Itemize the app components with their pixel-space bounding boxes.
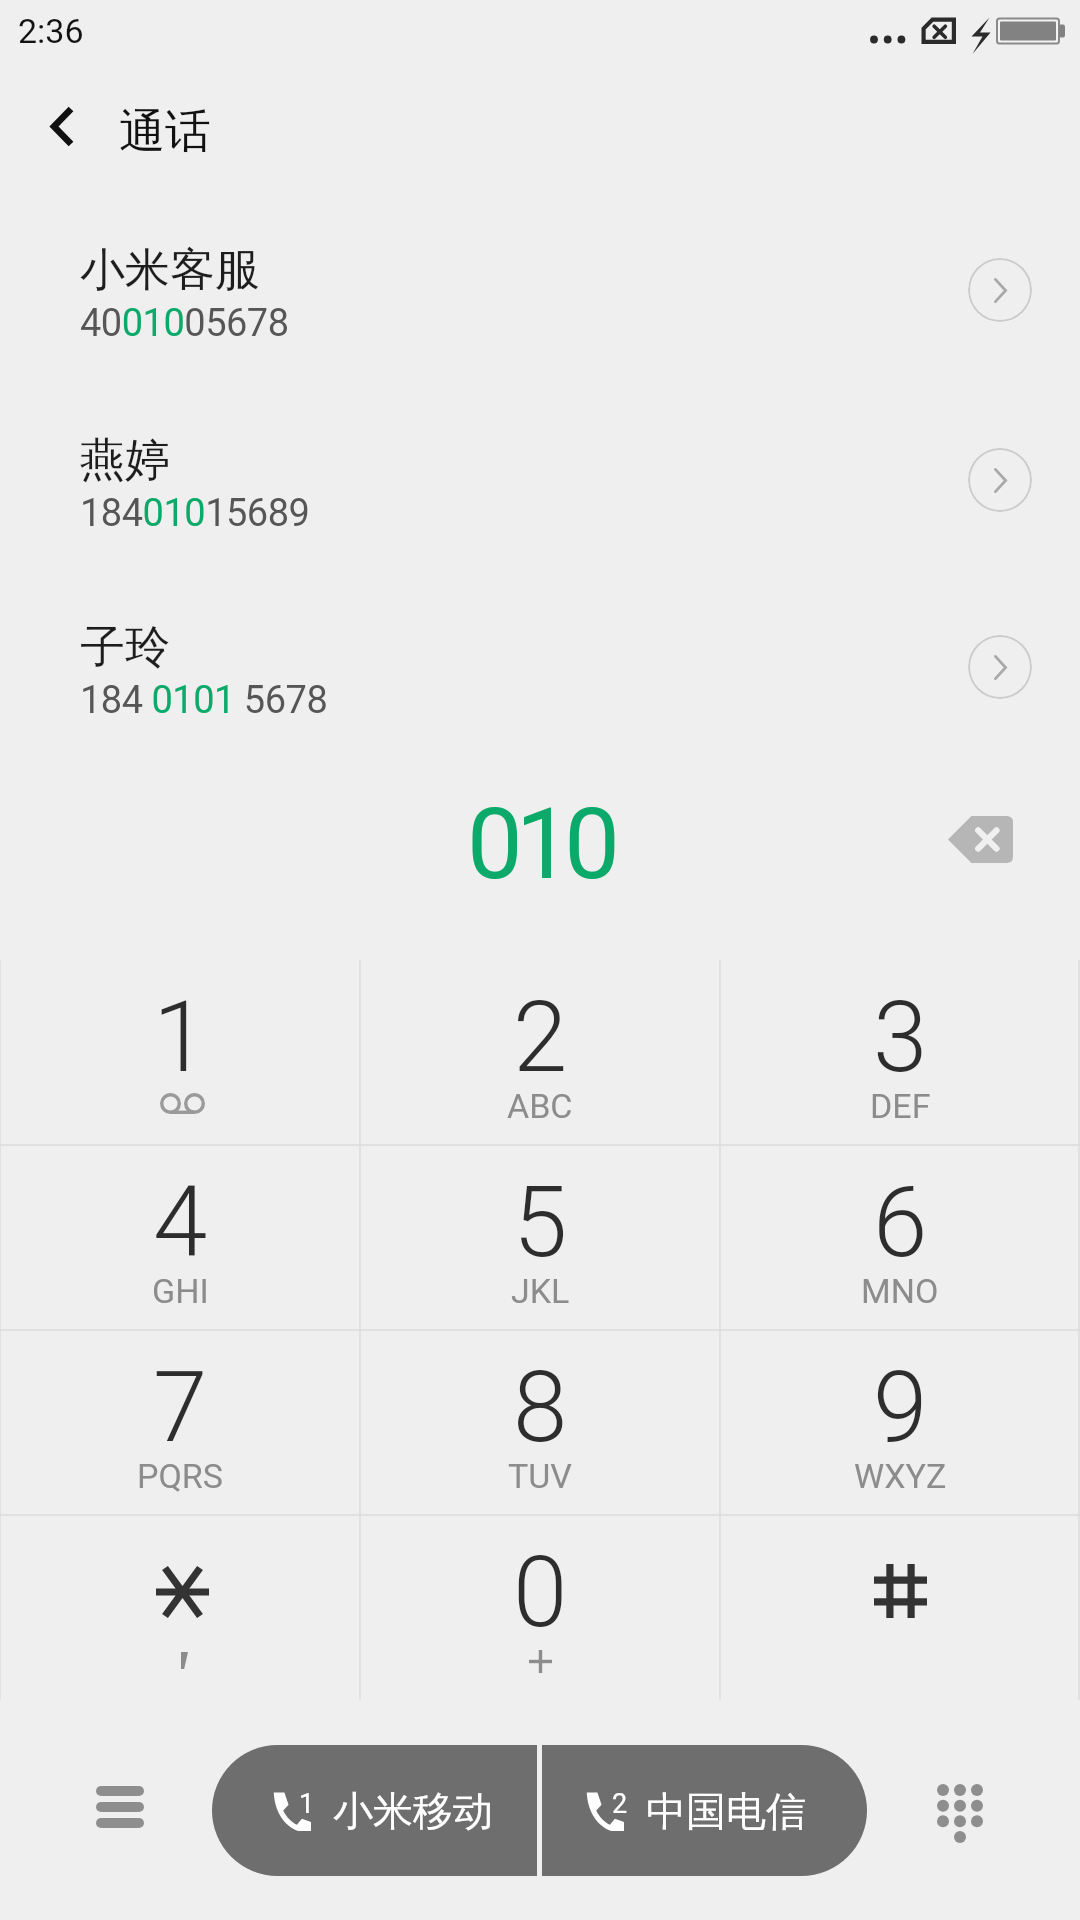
staticText: ABC (507, 1086, 573, 1126)
staticText: 7 (153, 1350, 208, 1465)
staticText: TUV (508, 1456, 572, 1496)
staticText: 184 0101 5678 (80, 678, 328, 723)
button[interactable]: 4 (0, 1145, 360, 1330)
button[interactable]: Open 小米客服 (968, 258, 1032, 322)
button[interactable]: 9 (720, 1330, 1080, 1515)
staticText: 通话 (119, 103, 211, 161)
staticText: 燕婷 (80, 432, 170, 489)
button[interactable]: 2 (360, 960, 720, 1145)
button[interactable]: 7 (0, 1330, 360, 1515)
staticText: MNO (861, 1271, 939, 1311)
staticText: 中国电信 (646, 1786, 806, 1836)
staticText: 小米客服 (80, 242, 260, 299)
staticText: 4001005678 (80, 301, 289, 346)
button[interactable]: 小米客服 (0, 202, 1080, 377)
staticText: 2:36 (18, 11, 84, 51)
button[interactable]: 5 (360, 1145, 720, 1330)
staticText: 3 (873, 980, 928, 1095)
button[interactable]: 1 (0, 960, 360, 1145)
staticText: 2 (612, 1788, 628, 1820)
staticText: WXYZ (854, 1456, 947, 1496)
button[interactable]: 1 (212, 1745, 537, 1876)
staticText: 18401015689 (80, 491, 310, 536)
staticText: 1 (299, 1788, 315, 1820)
button[interactable]: 3 (720, 960, 1080, 1145)
button[interactable]: Delete (925, 799, 1035, 879)
staticText: 010 (467, 786, 613, 902)
staticText: GHI (152, 1271, 209, 1311)
button[interactable] (0, 1515, 360, 1700)
button[interactable]: 0 (360, 1515, 720, 1700)
staticText: PQRS (137, 1456, 223, 1496)
staticText: 1 (153, 980, 208, 1095)
button[interactable]: Dialpad (900, 1753, 1020, 1873)
staticText: 子玲 (80, 619, 170, 676)
button[interactable]: Back (11, 75, 113, 177)
button[interactable]: 燕婷 (0, 392, 1080, 567)
staticText: 小米移动 (333, 1786, 493, 1836)
staticText: 8 (513, 1350, 568, 1465)
staticText: 9 (873, 1350, 928, 1465)
staticText: 5 (513, 1165, 568, 1280)
button[interactable]: 6 (720, 1145, 1080, 1330)
staticText: 6 (873, 1165, 928, 1280)
button[interactable]: 8 (360, 1330, 720, 1515)
staticText: 0 (513, 1535, 568, 1650)
staticText: DEF (870, 1086, 931, 1126)
button[interactable]: Menu (60, 1747, 180, 1867)
button[interactable]: Open 燕婷 (968, 448, 1032, 512)
button[interactable]: 2 (525, 1745, 867, 1876)
button[interactable]: 通话 (119, 103, 211, 161)
staticText: JKL (511, 1271, 570, 1311)
button[interactable]: 子玲 (0, 579, 1080, 754)
button[interactable]: Open 子玲 (968, 635, 1032, 699)
staticText: 2 (513, 980, 568, 1095)
button[interactable] (720, 1515, 1080, 1700)
staticText: 4 (153, 1165, 208, 1280)
